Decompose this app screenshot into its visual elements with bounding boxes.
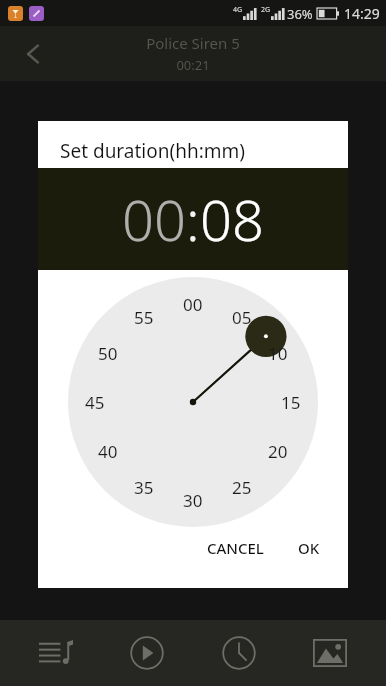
staticText: 05 — [232, 306, 252, 329]
staticText: 20 — [268, 440, 288, 463]
button[interactable]: Playlist — [20, 623, 92, 683]
staticText: 45 — [85, 391, 105, 414]
staticText: 25 — [232, 476, 252, 499]
button[interactable]: Timer — [203, 623, 275, 683]
staticText: 4G — [233, 5, 243, 15]
staticText: 55 — [134, 306, 154, 329]
staticText: 00 — [122, 181, 186, 257]
staticText: 08 — [200, 181, 264, 257]
staticText: 30 — [183, 489, 203, 512]
staticText: 40 — [98, 440, 118, 463]
staticText: 50 — [98, 342, 118, 365]
staticText: Police Siren 5 — [146, 33, 240, 53]
button[interactable]: CANCEL — [195, 530, 276, 566]
button[interactable]: 00 — [122, 181, 186, 257]
staticText: 00:21 — [176, 56, 210, 74]
staticText: 15 — [281, 391, 301, 414]
staticText: 10 — [268, 342, 288, 365]
staticText: 35 — [134, 476, 154, 499]
button[interactable]: 08 — [200, 181, 264, 257]
staticText: Set duration(hh:mm) — [60, 138, 246, 164]
button[interactable]: Play — [111, 623, 183, 683]
staticText: 00 — [183, 293, 203, 316]
staticText: CANCEL — [207, 538, 264, 558]
staticText: 36% — [287, 5, 313, 23]
staticText: : — [186, 181, 200, 257]
button[interactable]: OK — [286, 530, 332, 566]
button[interactable]: Gallery — [294, 623, 366, 683]
button[interactable]: 00 — [68, 277, 318, 527]
staticText: 2G — [261, 5, 271, 15]
staticText: 14:29 — [344, 4, 380, 23]
staticText: OK — [298, 538, 320, 558]
button[interactable]: Back — [10, 31, 56, 77]
